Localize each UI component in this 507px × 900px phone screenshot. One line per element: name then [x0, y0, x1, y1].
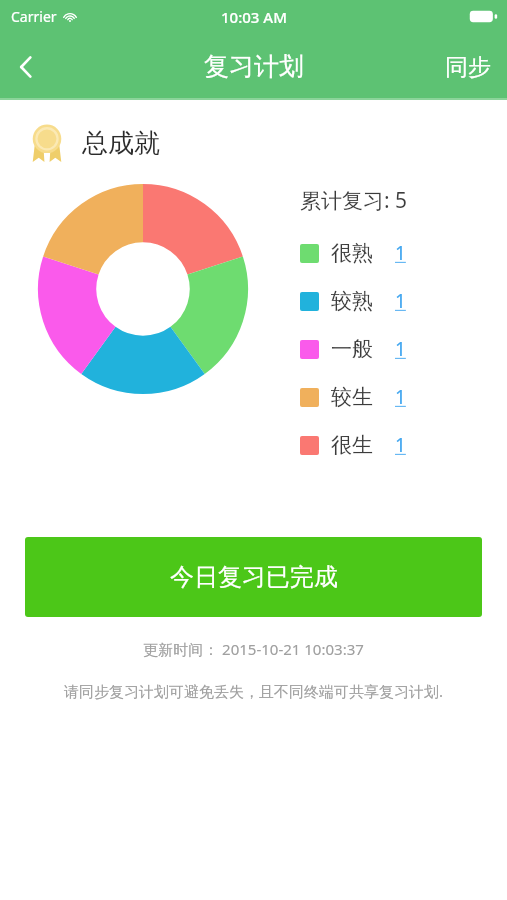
staticText: 较生 [331, 384, 373, 410]
staticText: Carrier [11, 7, 57, 26]
staticText: 今日复习已完成 [170, 562, 338, 592]
button[interactable]: 较生 [300, 373, 406, 421]
staticText: 1 [395, 384, 406, 410]
staticText: 一般 [331, 336, 373, 362]
staticText: 较熟 [331, 288, 373, 314]
staticText: 更新时间： 2015-10-21 10:03:37 [0, 639, 507, 659]
staticText: 同步 [445, 53, 491, 82]
staticText: 1 [395, 240, 406, 266]
button[interactable]: 很熟 [300, 229, 406, 277]
button[interactable]: 很生 [300, 421, 406, 469]
staticText: 1 [395, 336, 406, 362]
staticText: 很熟 [331, 240, 373, 266]
staticText: 很生 [331, 432, 373, 458]
button[interactable]: 一般 [300, 325, 406, 373]
staticText: 复习计划 [204, 51, 304, 82]
button[interactable]: 同步 [429, 39, 507, 95]
button[interactable]: 较熟 [300, 277, 406, 325]
staticText: 累计复习: 5 [300, 186, 408, 215]
staticText: 请同步复习计划可避免丢失，且不同终端可共享复习计划. [22, 681, 485, 701]
staticText: 1 [395, 288, 406, 314]
button[interactable]: 今日复习已完成 [25, 537, 482, 617]
staticText: 总成就 [82, 127, 160, 160]
staticText: 1 [395, 432, 406, 458]
staticText: 10:03 AM [221, 7, 287, 27]
button[interactable]: Back [0, 39, 52, 95]
